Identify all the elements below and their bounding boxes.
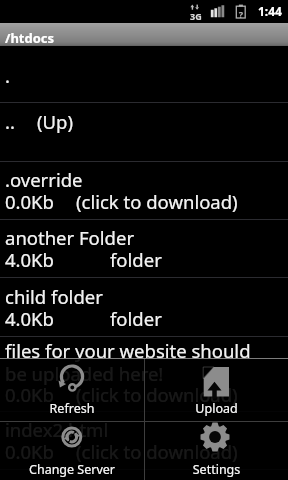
- button[interactable]: another Folder: [0, 220, 288, 278]
- button[interactable]: child folder: [0, 278, 288, 337]
- staticText: (click to download): [76, 189, 238, 214]
- button[interactable]: Change Server: [0, 422, 144, 480]
- button[interactable]: .override: [0, 162, 288, 220]
- button[interactable]: Settings: [145, 422, 288, 480]
- staticText: (click to download): [76, 439, 238, 464]
- button[interactable]: Upload: [145, 359, 288, 421]
- staticText: 0.0Kb: [5, 189, 54, 214]
- button[interactable]: ..: [0, 103, 288, 162]
- staticText: files for your website should: [5, 338, 251, 363]
- staticText: 1:44: [258, 3, 282, 19]
- staticText: ..: [5, 109, 15, 134]
- button[interactable]: .: [0, 46, 288, 103]
- staticText: ?: [237, 8, 245, 20]
- button[interactable]: index2.html: [0, 412, 288, 470]
- button[interactable]: files for your website should: [0, 337, 288, 412]
- staticText: .override: [5, 167, 83, 192]
- staticText: folder: [110, 247, 162, 272]
- staticText: 0.0Kb: [5, 439, 54, 464]
- staticText: (Up): [37, 109, 74, 134]
- staticText: Settings: [145, 461, 288, 478]
- staticText: 0.0Kb: [5, 382, 54, 407]
- staticText: Upload: [145, 400, 288, 417]
- staticText: be uploaded here!: [5, 361, 164, 386]
- staticText: (click to download): [76, 382, 238, 407]
- staticText: .: [5, 63, 10, 88]
- staticText: 4.0Kb: [5, 306, 54, 331]
- staticText: another Folder: [5, 225, 135, 250]
- staticText: child folder: [5, 284, 103, 309]
- staticText: Change Server: [0, 461, 144, 478]
- staticText: index2.html: [5, 417, 109, 442]
- staticText: folder: [110, 306, 162, 331]
- staticText: /htdocs: [5, 29, 55, 47]
- staticText: 3G: [190, 10, 202, 22]
- staticText: Refresh: [0, 400, 144, 417]
- staticText: 4.0Kb: [5, 247, 54, 272]
- button[interactable]: Refresh: [0, 359, 144, 421]
